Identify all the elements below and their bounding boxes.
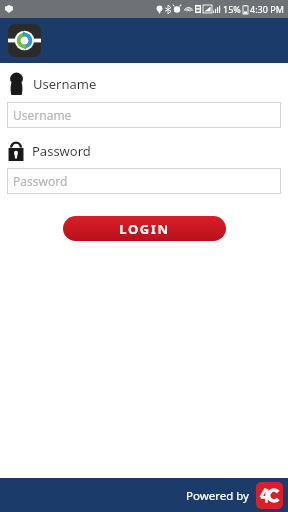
button[interactable]: 4C logo: [256, 482, 283, 509]
button[interactable]: Username: [7, 102, 281, 128]
button[interactable]: App logo: [8, 24, 41, 57]
staticText: Username: [13, 107, 72, 123]
button[interactable]: LOGIN: [63, 216, 226, 241]
staticText: LOGIN: [119, 220, 170, 238]
staticText: Username: [33, 75, 97, 93]
staticText: Password: [32, 142, 91, 160]
staticText: Password: [13, 173, 68, 189]
staticText: 15%: [223, 3, 241, 15]
staticText: 4:30 PM: [250, 3, 284, 15]
button[interactable]: Password: [7, 168, 281, 194]
staticText: Powered by: [186, 488, 249, 504]
